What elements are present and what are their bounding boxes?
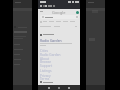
staticText: Radio Garden: [40, 53, 61, 57]
button[interactable]: Listings: [38, 69, 80, 73]
button[interactable]: Support: [38, 64, 80, 68]
button[interactable]: Radio Garden: [38, 32, 80, 47]
staticText: Browse: [40, 60, 52, 64]
staticText: Terms: [40, 77, 50, 81]
button[interactable]: Radio Garden: [38, 53, 80, 57]
button[interactable]: About: [38, 57, 80, 61]
button[interactable]: Terms: [38, 77, 80, 81]
button[interactable]: Browse: [38, 60, 80, 64]
staticText: Radio Garden: [40, 38, 62, 43]
button[interactable]: Account: [76, 11, 79, 14]
button[interactable]: Cities: [38, 49, 80, 53]
button[interactable]: Back: [39, 9, 44, 14]
button[interactable]: [40, 15, 79, 19]
staticText: Cities: [40, 49, 49, 53]
staticText: Listings: [40, 69, 52, 73]
staticText: Privacy: [40, 74, 51, 78]
staticText: About: [40, 57, 50, 61]
staticText: Google: [52, 10, 66, 15]
button[interactable]: Privacy: [38, 74, 80, 78]
staticText: Support: [40, 64, 53, 68]
